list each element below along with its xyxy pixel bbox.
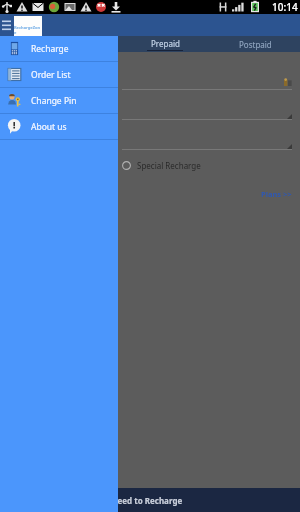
button[interactable]: Pick contact <box>284 78 292 86</box>
staticText: Proceed to Recharge <box>100 495 183 506</box>
button[interactable]: Proceed to Recharge <box>0 488 300 512</box>
button[interactable]: App logo <box>14 16 42 44</box>
staticText: Special Recharge <box>137 160 201 171</box>
button[interactable]: Special Recharge <box>122 158 201 173</box>
button[interactable]: Open navigation drawer <box>0 14 14 36</box>
staticText: Change Pin <box>31 95 77 107</box>
button[interactable]: About us <box>0 114 118 139</box>
button[interactable]: Plans >> <box>261 189 292 199</box>
staticText: Prepaid <box>151 38 180 49</box>
button[interactable]: Order List <box>0 62 118 87</box>
staticText: RechargeZone <box>14 25 42 35</box>
staticText: Order List <box>31 69 71 81</box>
button[interactable]: Recharge <box>0 36 118 61</box>
staticText: Postpaid <box>239 39 272 50</box>
button[interactable]: Postpaid <box>210 36 300 52</box>
staticText: About us <box>31 121 67 133</box>
button[interactable]: Prepaid <box>120 36 210 52</box>
button[interactable]: Change Pin <box>0 88 118 113</box>
staticText: Recharge <box>31 43 69 55</box>
staticText: 10:14 <box>272 0 298 14</box>
